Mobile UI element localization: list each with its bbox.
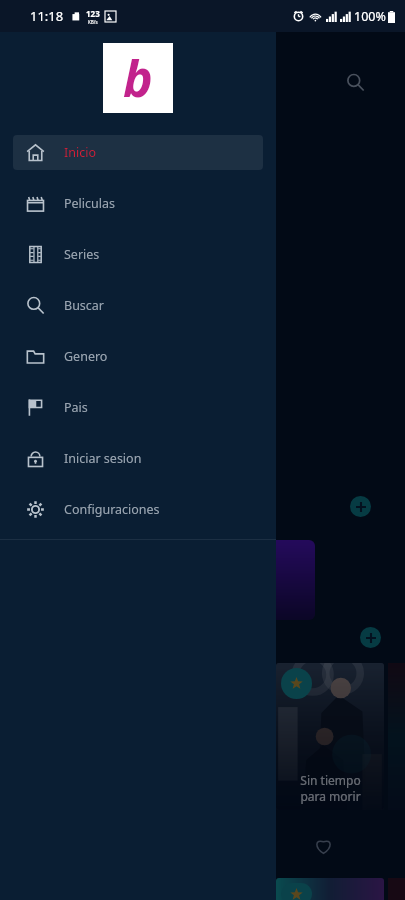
- button[interactable]: b: [103, 43, 173, 113]
- staticText: 11:18: [30, 7, 64, 25]
- button[interactable]: Sin tiempo: [276, 663, 384, 810]
- button[interactable]: Agregar: [360, 627, 381, 648]
- button[interactable]: Buscar: [13, 288, 263, 323]
- staticText: 123: [86, 8, 100, 19]
- staticText: Genero: [64, 348, 108, 365]
- staticText: b: [123, 44, 153, 112]
- button[interactable]: Series: [13, 237, 263, 272]
- button[interactable]: [276, 878, 384, 900]
- button[interactable]: Inicio: [13, 135, 263, 170]
- staticText: Configuraciones: [64, 501, 160, 518]
- staticText: Peliculas: [64, 195, 116, 212]
- staticText: 100%: [354, 8, 386, 25]
- staticText: Series: [64, 246, 100, 263]
- button[interactable]: Genero: [13, 339, 263, 374]
- staticText: KB/s: [88, 19, 98, 25]
- button[interactable]: Iniciar sesion: [13, 441, 263, 476]
- staticText: Pais: [64, 399, 88, 416]
- button[interactable]: Configuraciones: [13, 492, 263, 527]
- button[interactable]: Favorito: [306, 828, 340, 862]
- staticText: Iniciar sesion: [64, 450, 142, 467]
- staticText: para morir: [300, 788, 361, 804]
- staticText: Buscar: [64, 297, 105, 314]
- button[interactable]: Agregar: [350, 496, 371, 517]
- button[interactable]: Pais: [13, 390, 263, 425]
- button[interactable]: [180, 540, 315, 620]
- button[interactable]: Peliculas: [13, 186, 263, 221]
- button[interactable]: Buscar: [339, 66, 371, 98]
- staticText: Inicio: [64, 144, 96, 161]
- staticText: Sin tiempo: [300, 772, 361, 788]
